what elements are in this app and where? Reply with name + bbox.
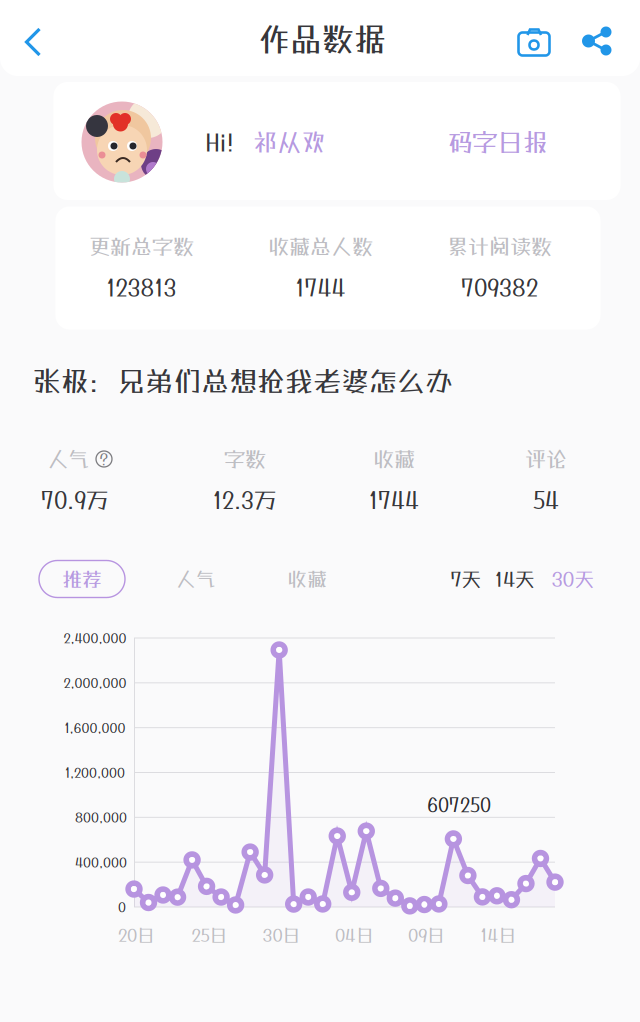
button[interactable]: 30天 — [548, 560, 598, 597]
button[interactable]: Camera — [508, 13, 560, 69]
staticText: 收藏总人数 — [268, 234, 373, 259]
staticText: 1,600,000 — [64, 720, 125, 735]
staticText: 更新总字数 — [89, 234, 194, 259]
staticText: 800,000 — [75, 809, 127, 825]
staticText: 张极：兄弟们总想抢我老婆怎么办 — [33, 364, 453, 397]
staticText: 评论 — [525, 446, 567, 472]
staticText: 709382 — [461, 274, 538, 301]
staticText: 14日 — [480, 925, 515, 945]
button[interactable]: Hi! — [53, 82, 620, 200]
staticText: 04日 — [335, 925, 373, 945]
staticText: 祁从欢 — [253, 128, 325, 156]
staticText: 2,400,000 — [63, 630, 126, 646]
staticText: 人气 — [176, 567, 216, 591]
button[interactable]: Back — [3, 12, 63, 72]
staticText: 70.9万 — [41, 487, 109, 513]
button[interactable]: Share — [571, 13, 623, 69]
staticText: 字数 — [224, 446, 266, 472]
staticText: 12.3万 — [213, 487, 277, 513]
staticText: 码字日报 — [447, 127, 547, 157]
staticText: 0 — [118, 899, 126, 915]
staticText: 作品数据 — [258, 20, 386, 58]
staticText: 收藏 — [287, 567, 327, 591]
staticText: 推荐 — [62, 567, 102, 591]
staticText: 09日 — [408, 925, 444, 945]
staticText: 1744 — [369, 487, 419, 513]
staticText: 123813 — [106, 274, 176, 301]
staticText: 1744 — [295, 274, 345, 301]
staticText: 1,200,000 — [65, 765, 125, 780]
staticText: 累计阅读数 — [447, 234, 552, 259]
staticText: 54 — [533, 487, 559, 513]
staticText: 30天 — [551, 567, 594, 591]
staticText: 7天 — [450, 567, 481, 591]
button[interactable]: 推荐 — [39, 560, 125, 597]
staticText: ? — [99, 450, 108, 468]
staticText: Hi! — [205, 128, 233, 156]
staticText: 14天 — [495, 567, 535, 591]
staticText: 20日 — [118, 925, 154, 945]
staticText: 2,000,000 — [63, 675, 126, 691]
staticText: 400,000 — [75, 854, 127, 870]
staticText: 人气 — [47, 446, 89, 472]
button[interactable]: 收藏 — [277, 560, 337, 597]
button[interactable]: 人气 — [166, 560, 226, 597]
button[interactable]: 14天 — [490, 560, 540, 597]
staticText: 收藏 — [373, 446, 415, 472]
staticText: 607250 — [427, 794, 491, 816]
button[interactable]: 7天 — [444, 560, 488, 597]
staticText: 25日 — [191, 925, 226, 945]
staticText: 30日 — [262, 925, 299, 945]
